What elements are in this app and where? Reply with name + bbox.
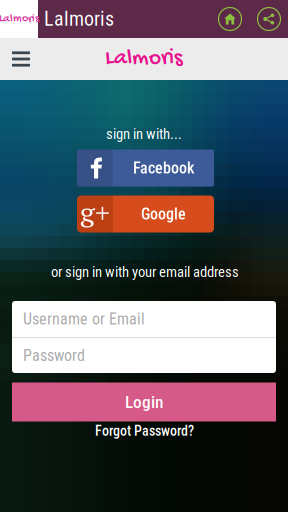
staticText: Login xyxy=(125,392,163,412)
staticText: Forgot Password? xyxy=(95,423,194,439)
button[interactable]: Forgot Password? xyxy=(92,420,197,442)
staticText: Lalmoris xyxy=(105,45,183,73)
button[interactable]: Login xyxy=(12,382,276,421)
button[interactable]: Share xyxy=(256,6,282,32)
staticText: Lalmoris xyxy=(0,12,39,26)
staticText: Lalmoris xyxy=(44,7,114,31)
button[interactable]: g+ xyxy=(77,195,214,232)
staticText: Password xyxy=(23,346,85,365)
button[interactable]: Menu xyxy=(0,38,42,80)
staticText: g+ xyxy=(80,193,110,231)
staticText: or sign in with your email address xyxy=(51,263,239,281)
button[interactable]: Facebook xyxy=(77,149,214,186)
staticText: Facebook xyxy=(133,159,194,177)
staticText: sign in with... xyxy=(106,125,182,143)
staticText: Google xyxy=(141,205,186,223)
staticText: Username or Email xyxy=(23,310,145,328)
button[interactable]: Username or Email xyxy=(12,301,276,337)
button[interactable]: Home xyxy=(217,6,243,32)
button[interactable]: Password xyxy=(12,338,276,373)
